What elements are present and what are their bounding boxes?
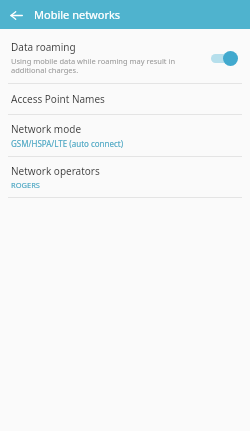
button[interactable]: Access Point Names xyxy=(0,84,250,114)
staticText: GSM/HSPA/LTE (auto connect) xyxy=(11,138,124,149)
button[interactable]: Back xyxy=(6,5,26,25)
button[interactable]: Network mode xyxy=(0,115,250,156)
staticText: Mobile networks xyxy=(34,7,121,22)
button[interactable]: Data roaming toggle xyxy=(209,50,239,66)
staticText: Data roaming xyxy=(11,40,76,54)
button[interactable]: Data roaming xyxy=(0,34,250,83)
staticText: Using mobile data while roaming may resu… xyxy=(11,56,176,76)
staticText: ROGERS xyxy=(11,180,40,190)
staticText: Network operators xyxy=(11,164,100,178)
staticText: Access Point Names xyxy=(11,92,105,106)
staticText: Network mode xyxy=(11,122,82,136)
button[interactable]: Network operators xyxy=(0,157,250,197)
